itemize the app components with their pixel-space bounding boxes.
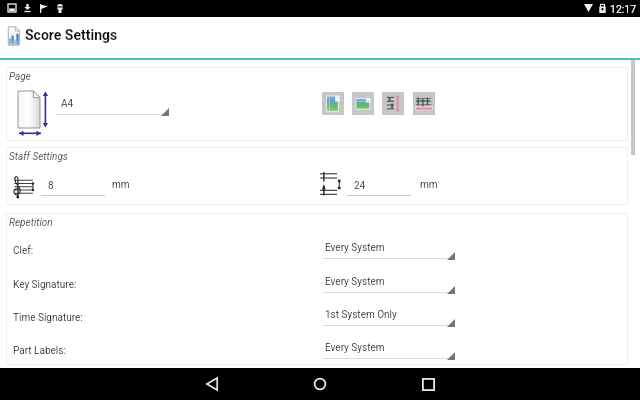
button[interactable]: A4: [55, 98, 168, 118]
button[interactable]: Back: [158, 368, 266, 400]
staticText: 12:17: [610, 3, 637, 15]
staticText: Clef:: [13, 245, 34, 257]
button[interactable]: Part Labels:: [7, 332, 627, 365]
button[interactable]: Portrait page: [322, 92, 344, 115]
button[interactable]: Recent apps: [374, 368, 482, 400]
staticText: mm: [420, 179, 438, 191]
button[interactable]: 24: [347, 180, 411, 200]
staticText: 8: [48, 180, 54, 192]
staticText: Score Settings: [25, 27, 118, 43]
button[interactable]: Clef:: [7, 232, 627, 265]
staticText: Every System: [325, 276, 385, 288]
button[interactable]: 1st System Only: [323, 309, 454, 329]
staticText: Every System: [325, 342, 385, 354]
button[interactable]: Time Signature:: [7, 299, 627, 332]
button[interactable]: Every System: [323, 242, 454, 262]
staticText: 1st System Only: [325, 309, 397, 321]
button[interactable]: 8: [41, 180, 105, 200]
staticText: A4: [61, 98, 74, 110]
staticText: Every System: [325, 242, 385, 254]
staticText: Key Signature:: [13, 279, 77, 291]
staticText: Repetition: [9, 217, 53, 229]
staticText: 24: [354, 180, 366, 192]
button[interactable]: Every System: [323, 276, 454, 296]
button[interactable]: Score Settings: [0, 17, 640, 58]
staticText: Staff Settings: [9, 151, 68, 163]
staticText: Page: [9, 71, 31, 83]
staticText: Part Labels:: [13, 345, 66, 357]
button[interactable]: System spacing: [413, 92, 435, 115]
staticText: mm: [112, 179, 130, 191]
button[interactable]: Key Signature:: [7, 266, 627, 299]
button[interactable]: Staff spacing: [382, 92, 404, 115]
button[interactable]: Home: [266, 368, 374, 400]
staticText: Time Signature:: [13, 312, 83, 324]
button[interactable]: Every System: [323, 342, 454, 362]
button[interactable]: Landscape page: [352, 92, 374, 115]
